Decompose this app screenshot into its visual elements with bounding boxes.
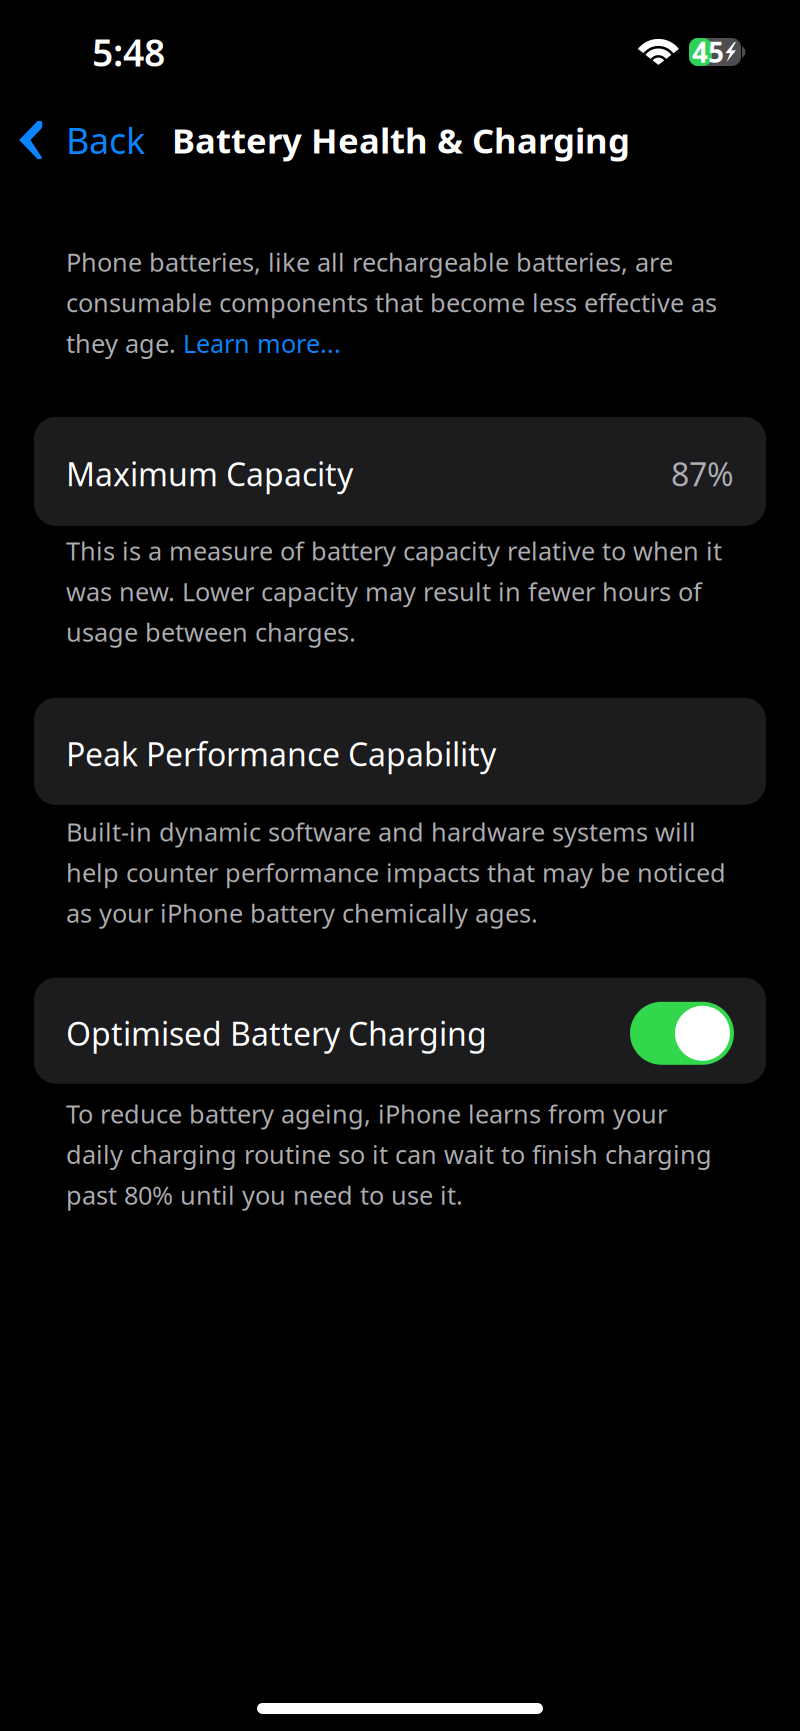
staticText: was new. Lower capacity may result in fe…: [66, 575, 702, 608]
button[interactable]: Optimised Battery Charging, on: [630, 1002, 734, 1065]
button[interactable]: Peak Performance Capability: [34, 698, 766, 805]
staticText: This is a measure of battery capacity re…: [66, 534, 722, 567]
staticText: Optimised Battery Charging: [66, 1012, 487, 1054]
staticText: help counter performance impacts that ma…: [66, 855, 726, 889]
staticText: as your iPhone battery chemically ages.: [66, 896, 538, 930]
staticText: 45: [692, 33, 724, 71]
button[interactable]: Learn more...: [183, 326, 341, 360]
staticText: Battery Health & Charging: [172, 117, 630, 163]
staticText: usage between charges.: [66, 615, 356, 649]
staticText: Maximum Capacity: [66, 453, 353, 495]
staticText: To reduce battery ageing, iPhone learns …: [66, 1097, 667, 1130]
staticText: they age.: [66, 326, 183, 360]
button[interactable]: Maximum Capacity: [34, 417, 766, 526]
staticText: Phone batteries, like all rechargeable b…: [66, 245, 673, 279]
staticText: Peak Performance Capability: [66, 733, 496, 775]
staticText: consumable components that become less e…: [66, 286, 717, 319]
staticText: Back: [66, 116, 145, 164]
staticText: 87%: [671, 453, 734, 495]
staticText: Built-in dynamic software and hardware s…: [66, 815, 696, 848]
staticText: 5:48: [92, 27, 165, 77]
staticText: past 80% until you need to use it.: [66, 1178, 463, 1212]
button[interactable]: Back: [0, 96, 172, 184]
staticText: Learn more...: [183, 326, 341, 360]
staticText: daily charging routine so it can wait to…: [66, 1137, 712, 1171]
button[interactable]: Optimised Battery Charging: [34, 978, 766, 1084]
